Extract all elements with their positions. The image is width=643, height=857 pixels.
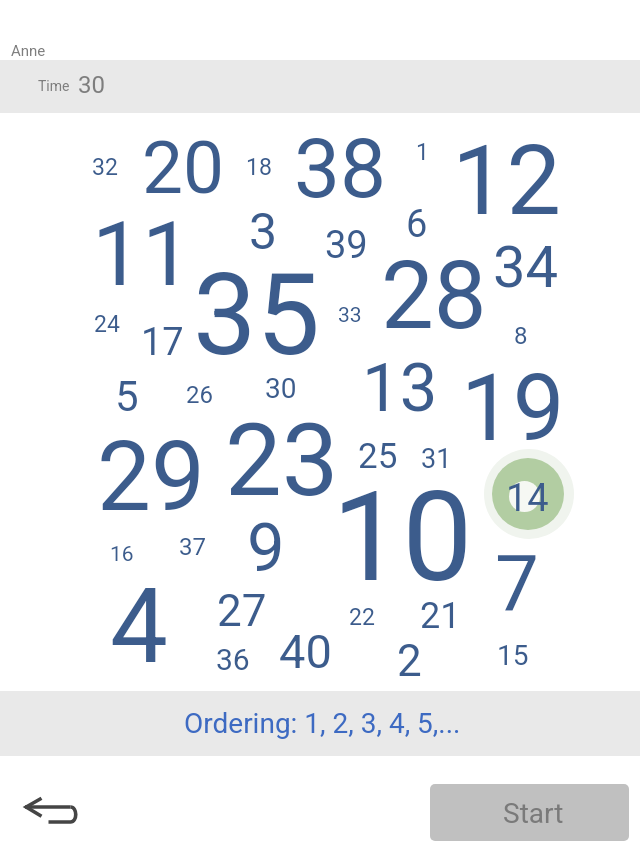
- button[interactable]: 11: [92, 202, 193, 306]
- button[interactable]: 37: [179, 533, 206, 561]
- button[interactable]: 39: [325, 223, 368, 268]
- button[interactable]: 14: [506, 476, 549, 521]
- button[interactable]: Undo: [22, 794, 80, 828]
- staticText: Anne: [11, 42, 46, 60]
- button[interactable]: 6: [406, 202, 428, 247]
- button[interactable]: 3: [249, 203, 278, 262]
- staticText: Start: [503, 797, 564, 830]
- button[interactable]: Ordering: 1, 2, 3, 4, 5,...: [0, 691, 640, 756]
- button[interactable]: Start: [430, 784, 629, 841]
- button[interactable]: 25: [358, 436, 398, 477]
- button[interactable]: 27: [217, 585, 267, 637]
- button[interactable]: 5: [115, 372, 139, 421]
- button[interactable]: 15: [497, 639, 529, 672]
- button[interactable]: 26: [186, 381, 213, 409]
- button[interactable]: 7: [495, 539, 539, 630]
- button[interactable]: 40: [279, 624, 332, 679]
- staticText: 30: [78, 71, 105, 99]
- button[interactable]: 18: [246, 154, 272, 181]
- button[interactable]: 31: [421, 443, 452, 475]
- button[interactable]: 16: [110, 542, 134, 567]
- button[interactable]: 23: [225, 401, 339, 519]
- staticText: Ordering: 1, 2, 3, 4, 5,...: [184, 707, 461, 740]
- button[interactable]: 38: [294, 121, 387, 217]
- button[interactable]: 33: [338, 303, 362, 328]
- button[interactable]: 9: [247, 509, 285, 588]
- button[interactable]: 30: [265, 372, 297, 405]
- button[interactable]: 17: [141, 320, 184, 365]
- button[interactable]: 8: [514, 322, 528, 350]
- button[interactable]: 20: [142, 125, 225, 211]
- button[interactable]: 35: [193, 249, 321, 381]
- button[interactable]: 12: [452, 124, 562, 238]
- button[interactable]: 19: [461, 355, 565, 463]
- staticText: Time: [38, 78, 70, 94]
- button[interactable]: 29: [97, 421, 205, 534]
- button[interactable]: 36: [216, 642, 250, 677]
- button[interactable]: 13: [362, 349, 438, 428]
- button[interactable]: 34: [493, 233, 559, 301]
- button[interactable]: 10: [332, 464, 473, 610]
- button[interactable]: 32: [92, 154, 118, 181]
- button[interactable]: 28: [381, 241, 487, 351]
- button[interactable]: 1: [416, 139, 429, 166]
- button[interactable]: 2: [397, 635, 422, 687]
- button[interactable]: 21: [420, 595, 461, 637]
- button[interactable]: 4: [110, 566, 168, 687]
- button[interactable]: 24: [94, 311, 120, 338]
- button[interactable]: 22: [349, 604, 375, 631]
